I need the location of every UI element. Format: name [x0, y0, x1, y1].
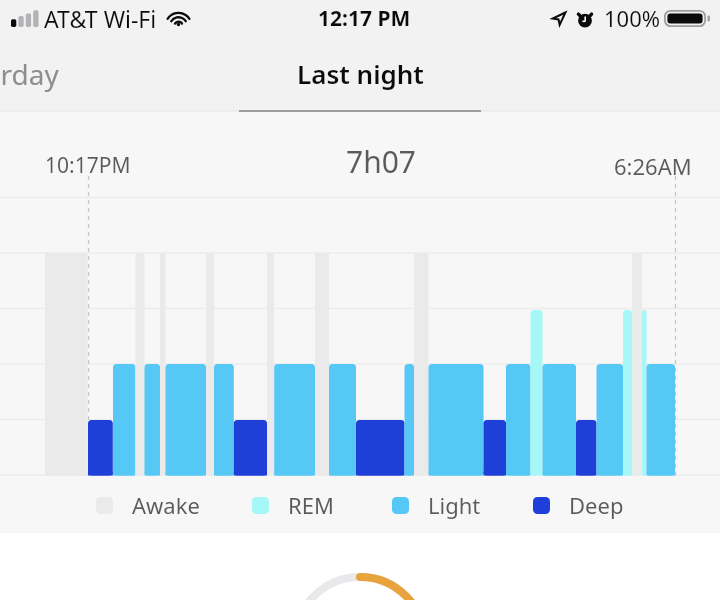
- button[interactable]: Light: [392, 490, 481, 520]
- button[interactable]: Yesterday: [0, 46, 69, 102]
- button[interactable]: Sleep stages hypnogram, 10:17PM to 6:26A…: [0, 111, 720, 533]
- staticText: Light: [428, 490, 481, 520]
- button[interactable]: Deep: [533, 490, 624, 520]
- button[interactable]: REM: [252, 490, 334, 520]
- staticText: Deep: [569, 490, 624, 520]
- staticText: 12:17 PM: [318, 4, 411, 33]
- button[interactable]: Last night: [283, 48, 438, 99]
- staticText: REM: [288, 490, 334, 520]
- staticText: 7h07: [346, 141, 417, 182]
- staticText: 6:26AM: [614, 151, 692, 181]
- staticText: Yesterday: [0, 55, 59, 93]
- staticText: 10:17PM: [45, 151, 131, 180]
- button[interactable]: Awake: [96, 490, 200, 520]
- button[interactable]: Sleep score: [287, 569, 433, 600]
- staticText: Last night: [297, 56, 424, 91]
- staticText: Awake: [132, 490, 200, 520]
- staticText: AT&T Wi-Fi: [44, 3, 157, 34]
- staticText: 100%: [604, 3, 661, 33]
